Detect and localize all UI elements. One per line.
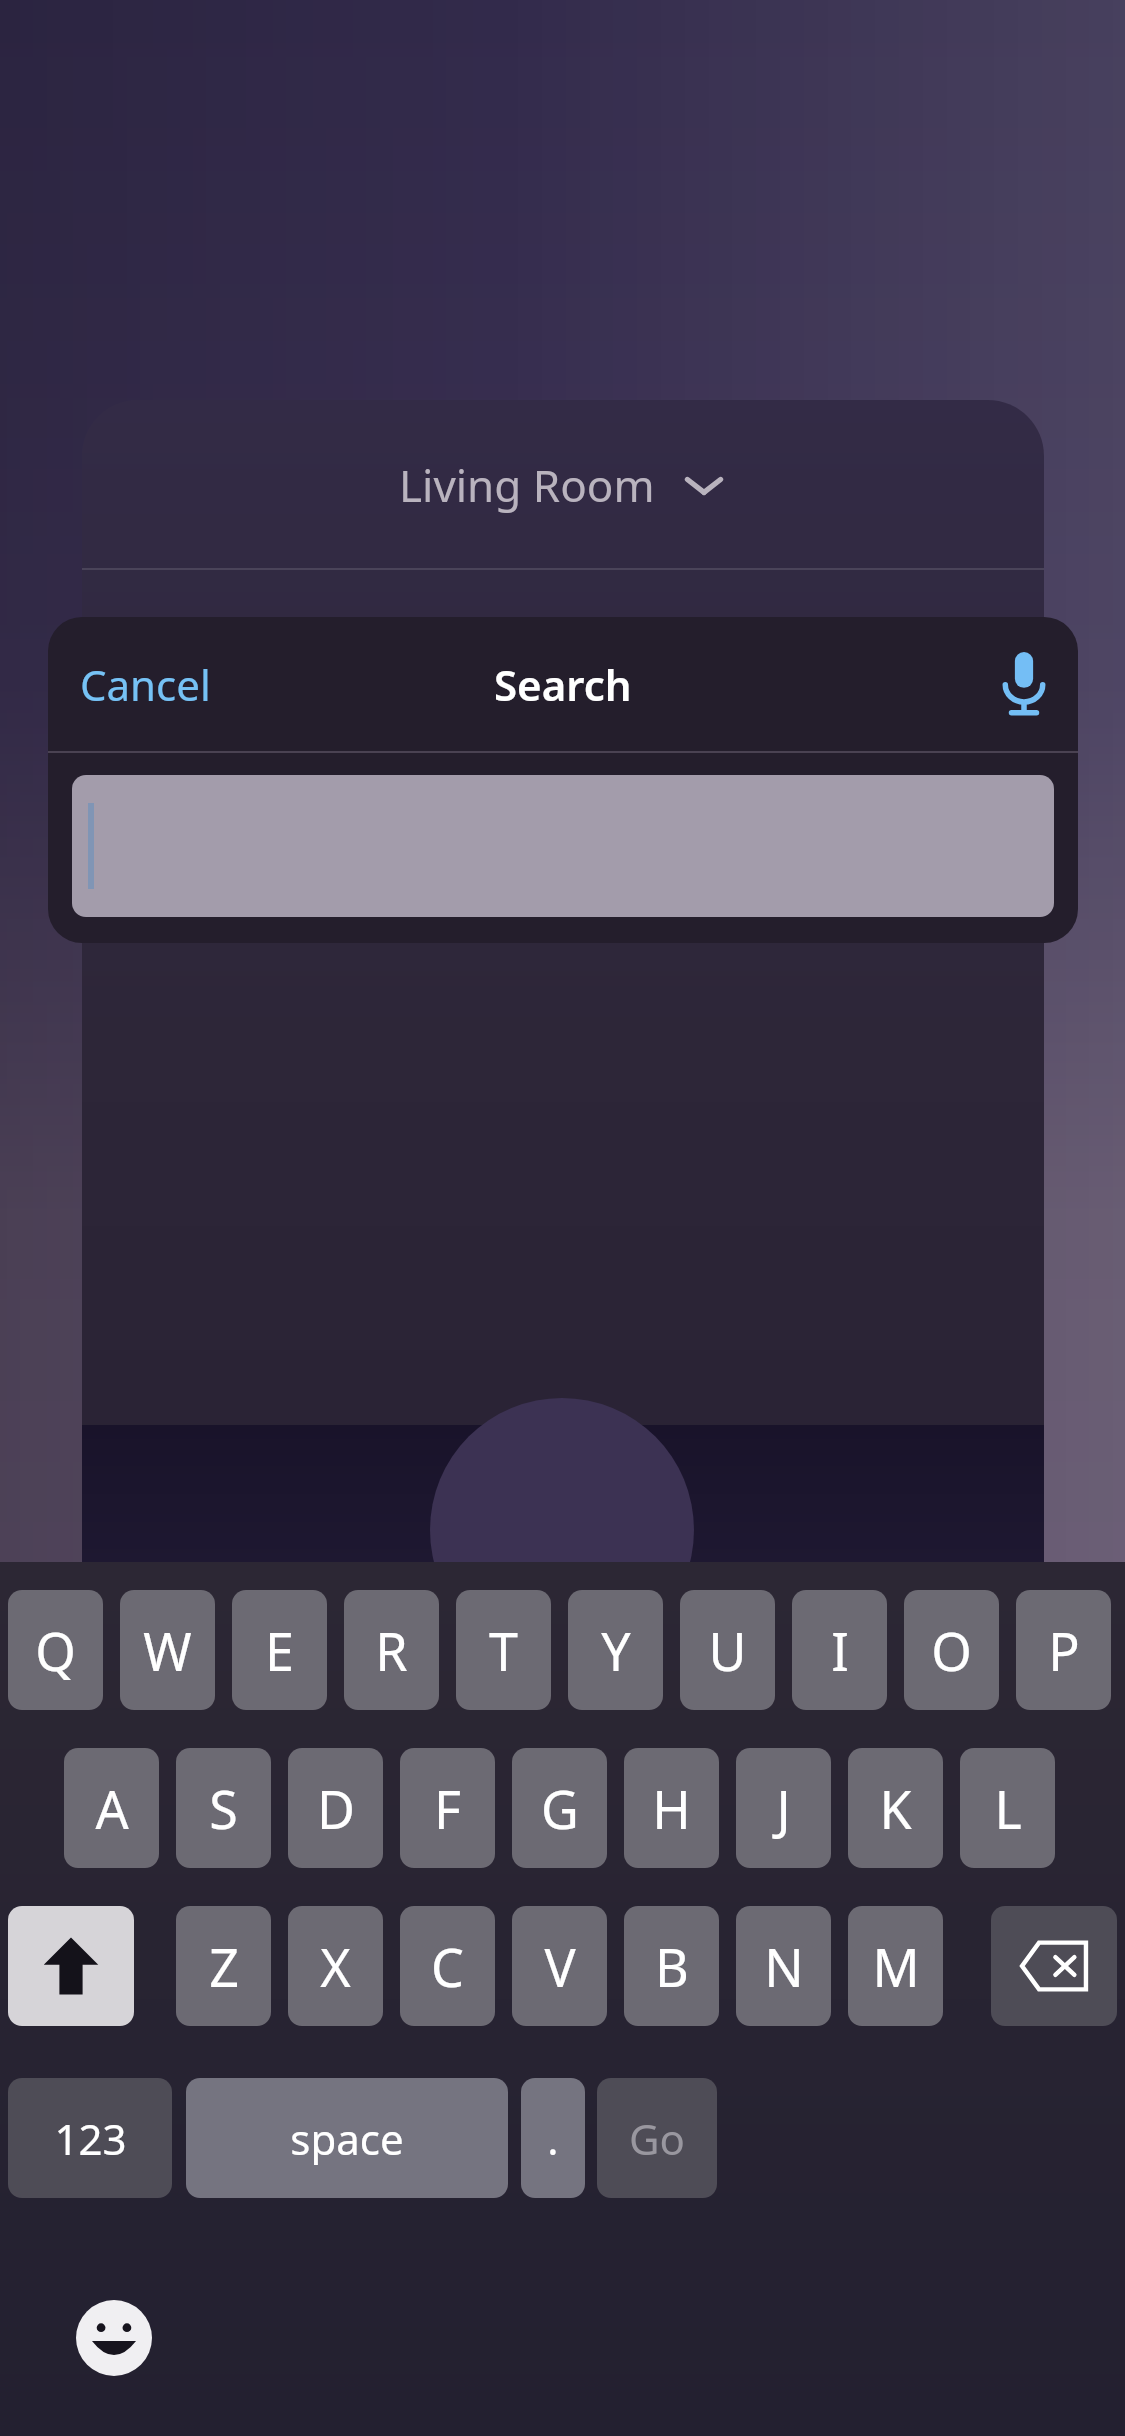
staticText: L [994, 1773, 1022, 1844]
button[interactable]: space [186, 2078, 508, 2198]
staticText: K [879, 1773, 912, 1844]
button[interactable]: G [512, 1748, 607, 1868]
staticText: R [375, 1615, 408, 1686]
staticText: V [544, 1931, 576, 2002]
button[interactable]: Backspace [991, 1906, 1117, 2026]
staticText: W [143, 1615, 192, 1686]
button[interactable]: D [288, 1748, 383, 1868]
staticText: D [317, 1773, 355, 1844]
button[interactable]: M [848, 1906, 943, 2026]
button[interactable]: A [64, 1748, 159, 1868]
staticText: Living Room [399, 455, 655, 515]
staticText: Z [209, 1931, 239, 2002]
button[interactable]: J [736, 1748, 831, 1868]
button[interactable]: Living Room [389, 445, 737, 525]
button[interactable]: K [848, 1748, 943, 1868]
button[interactable]: N [736, 1906, 831, 2026]
staticText: S [209, 1773, 238, 1844]
staticText: T [489, 1615, 518, 1686]
button[interactable]: R [344, 1590, 439, 1710]
staticText: A [95, 1773, 129, 1844]
staticText: F [434, 1773, 461, 1844]
button[interactable]: Z [176, 1906, 271, 2026]
staticText: U [708, 1615, 747, 1686]
button[interactable]: V [512, 1906, 607, 2026]
button[interactable]: W [120, 1590, 215, 1710]
staticText: Go [629, 2110, 685, 2167]
staticText: B [655, 1931, 689, 2002]
button[interactable]: B [624, 1906, 719, 2026]
staticText: J [776, 1773, 791, 1844]
button[interactable]: F [400, 1748, 495, 1868]
button[interactable]: . [521, 2078, 585, 2198]
staticText: Search [494, 656, 632, 713]
staticText: space [290, 2110, 404, 2167]
button[interactable]: C [400, 1906, 495, 2026]
staticText: Q [35, 1615, 76, 1686]
button[interactable]: S [176, 1748, 271, 1868]
staticText: E [265, 1615, 294, 1686]
staticText: 123 [54, 2110, 127, 2167]
button[interactable]: Go [597, 2078, 717, 2198]
staticText: Cancel [80, 656, 211, 713]
button[interactable]: 123 [8, 2078, 172, 2198]
button[interactable]: E [232, 1590, 327, 1710]
button[interactable]: U [680, 1590, 775, 1710]
staticText: X [320, 1931, 351, 2002]
button[interactable]: I [792, 1590, 887, 1710]
button[interactable]: H [624, 1748, 719, 1868]
staticText: M [872, 1931, 920, 2002]
staticText: I [831, 1615, 849, 1686]
staticText: P [1048, 1615, 1080, 1686]
button[interactable]: Shift [8, 1906, 134, 2026]
staticText: H [652, 1773, 691, 1844]
button[interactable]: Emoji keyboard [76, 2300, 152, 2376]
staticText: O [931, 1615, 972, 1686]
button[interactable]: Q [8, 1590, 103, 1710]
button[interactable]: O [904, 1590, 999, 1710]
button[interactable]: T [456, 1590, 551, 1710]
button[interactable]: Y [568, 1590, 663, 1710]
button[interactable]: Cancel [68, 640, 223, 729]
button[interactable]: X [288, 1906, 383, 2026]
button[interactable] [72, 775, 1054, 917]
staticText: C [431, 1931, 464, 2002]
button[interactable]: L [960, 1748, 1055, 1868]
button[interactable]: P [1016, 1590, 1111, 1710]
staticText: . [547, 2110, 559, 2167]
staticText: G [541, 1773, 579, 1844]
staticText: Y [601, 1615, 631, 1686]
staticText: N [764, 1931, 804, 2002]
button[interactable]: Voice search [986, 638, 1062, 730]
